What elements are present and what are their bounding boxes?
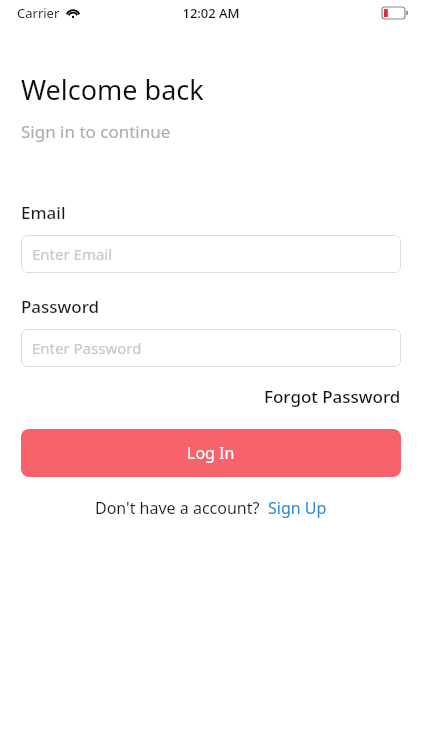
button[interactable]: Log In bbox=[21, 429, 401, 477]
staticText: Sign Up bbox=[268, 497, 327, 519]
staticText: Forgot Password bbox=[264, 385, 401, 408]
button[interactable]: Enter Password bbox=[21, 329, 401, 367]
staticText: Carrier bbox=[17, 4, 60, 22]
button[interactable]: Forgot Password bbox=[264, 383, 422, 410]
staticText: Sign in to continue bbox=[21, 120, 171, 143]
staticText: Don't have a account? bbox=[95, 497, 260, 519]
staticText: Log In bbox=[187, 442, 235, 464]
staticText: Password bbox=[21, 295, 100, 318]
staticText: 12:02 AM bbox=[182, 4, 240, 22]
staticText: Email bbox=[21, 201, 66, 224]
button[interactable]: Enter Email bbox=[21, 235, 401, 273]
other: Wi-Fi signal bbox=[66, 6, 80, 20]
staticText: Enter Email bbox=[32, 244, 113, 264]
staticText: Welcome back bbox=[21, 71, 204, 108]
staticText: Enter Password bbox=[32, 338, 142, 358]
other: Battery low bbox=[382, 7, 408, 19]
button[interactable]: Sign Up bbox=[260, 495, 327, 521]
